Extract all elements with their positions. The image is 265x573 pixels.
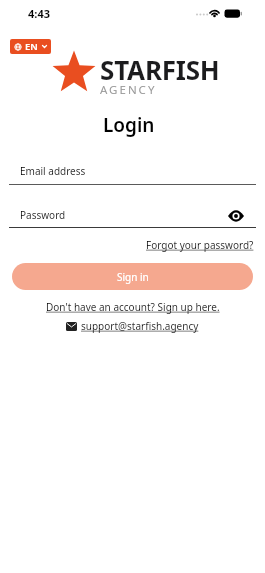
button[interactable]: Don't have an account? Sign up here. xyxy=(46,300,220,314)
button[interactable]: Email address xyxy=(9,160,256,185)
staticText: EN xyxy=(25,40,38,53)
staticText: 4:43 xyxy=(28,6,50,21)
staticText: AGENCY xyxy=(100,82,157,98)
staticText: STARFISH xyxy=(100,52,220,87)
button[interactable]: Sign in xyxy=(12,263,253,290)
button[interactable]: support@starfish.agency xyxy=(66,319,199,333)
staticText: Sign in xyxy=(117,270,149,284)
staticText: Login xyxy=(103,112,155,138)
button[interactable]: Forgot your password? xyxy=(146,238,254,252)
staticText: Password xyxy=(20,208,66,222)
button[interactable]: EN xyxy=(10,39,51,54)
button[interactable] xyxy=(228,210,244,222)
button[interactable]: Password xyxy=(9,203,256,228)
staticText: support@starfish.agency xyxy=(81,319,199,333)
staticText: Email address xyxy=(20,164,86,178)
